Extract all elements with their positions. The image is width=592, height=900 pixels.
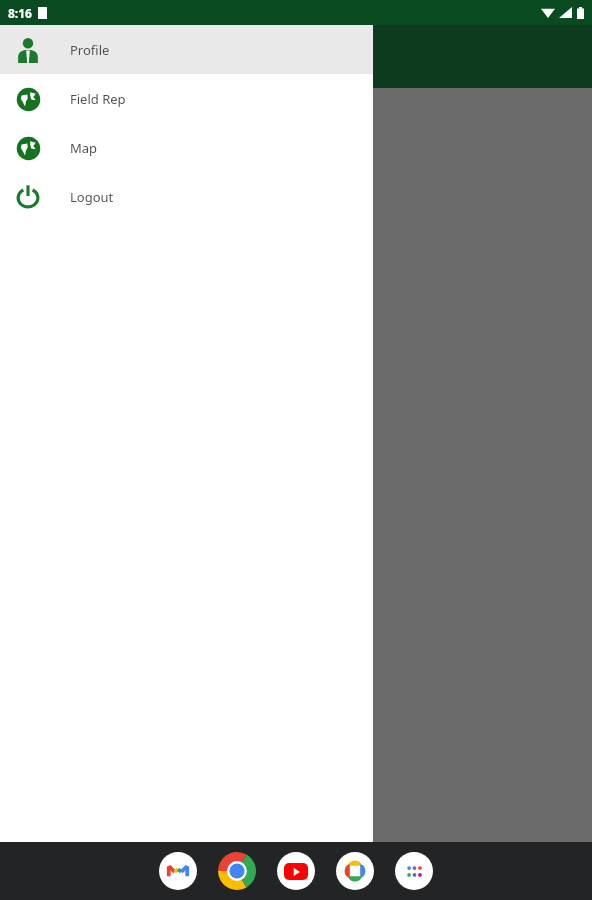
- button[interactable]: Map: [0, 123, 373, 172]
- button[interactable]: Profile: [0, 25, 373, 74]
- staticText: 8:16: [8, 5, 32, 21]
- button[interactable]: Chrome: [217, 851, 257, 891]
- staticText: Field Rep: [70, 90, 126, 108]
- button[interactable]: Field Rep: [0, 74, 373, 123]
- button[interactable]: All apps: [394, 851, 434, 891]
- staticText: Profile: [70, 41, 110, 59]
- staticText: Logout: [70, 188, 114, 206]
- button[interactable]: Logout: [0, 172, 373, 221]
- button[interactable]: Gmail: [158, 851, 198, 891]
- staticText: Map: [70, 139, 98, 157]
- button[interactable]: Google Photos: [335, 851, 375, 891]
- button[interactable]: YouTube: [276, 851, 316, 891]
